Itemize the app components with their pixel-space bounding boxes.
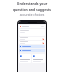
button[interactable] [19,45,45,48]
button[interactable] [19,49,45,52]
staticText: question and suggests [0,7,64,12]
button[interactable] [19,41,45,44]
staticText: accurate choices [0,13,64,17]
staticText: Understands your [0,1,64,6]
button[interactable] [19,25,45,28]
button[interactable] [19,37,45,40]
button[interactable]: Option card [19,54,31,63]
button[interactable] [19,29,45,36]
button[interactable]: Option card [32,54,45,63]
